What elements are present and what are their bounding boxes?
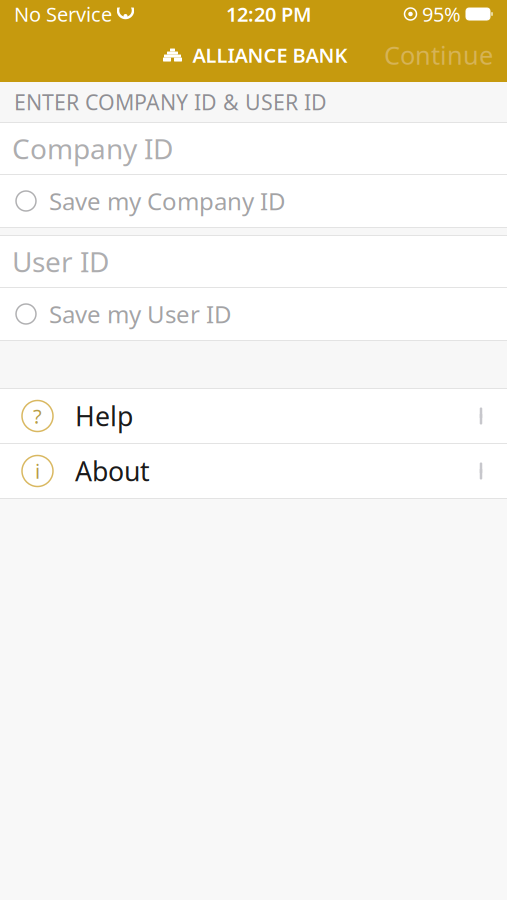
staticText: About [75,453,150,489]
button[interactable]: Save my Company ID [0,175,507,227]
staticText: Save my User ID [49,298,232,330]
staticText: ENTER COMPANY ID & USER ID [14,88,327,116]
staticText: User ID [12,243,109,280]
button[interactable]: ? [0,389,507,443]
staticText: Save my Company ID [49,185,286,217]
button[interactable]: Continue [370,28,507,82]
staticText: ALLIANCE BANK [192,42,347,68]
staticText: ? [33,403,42,429]
staticText: i [35,458,40,484]
staticText: Continue [384,38,493,72]
staticText: Help [75,398,133,434]
staticText: 95% [422,1,461,27]
staticText: 12:20 PM [226,1,312,27]
button[interactable]: Save my User ID [0,288,507,340]
staticText: No Service [14,1,112,27]
staticText: Company ID [12,130,173,167]
button[interactable]: i [0,444,507,498]
